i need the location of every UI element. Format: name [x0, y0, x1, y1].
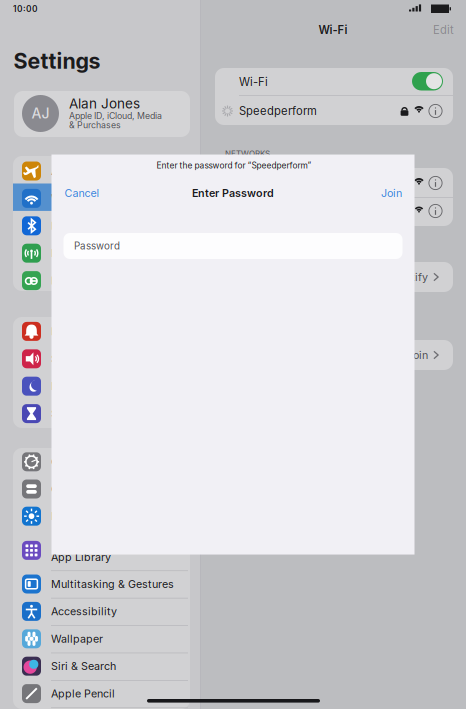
button[interactable]: Notifications — [0, 0, 466, 709]
staticText: Ask to Join — [373, 348, 428, 361]
staticText: Wi-Fi — [239, 75, 268, 89]
staticText: Join — [381, 186, 402, 199]
button[interactable] — [14, 91, 190, 137]
staticText: Aeroplane Mode — [51, 164, 134, 177]
staticText: Edit — [433, 23, 454, 37]
button[interactable]: Display & Brightness — [0, 0, 466, 709]
button[interactable]: Control Centre — [0, 0, 466, 709]
button[interactable]: Aeroplane Mode — [0, 0, 466, 709]
button[interactable]: App Library — [0, 0, 466, 709]
button[interactable]: Cancel — [0, 0, 466, 709]
button[interactable]: Bluetooth — [0, 0, 466, 709]
button[interactable]: Multitasking & Gestures — [0, 0, 466, 709]
staticText: Mobile Data — [51, 247, 113, 260]
button[interactable]: Wallpaper — [0, 0, 466, 709]
button[interactable]: Personal Hotspot — [0, 0, 466, 709]
staticText: App Library — [51, 550, 111, 563]
staticText: Apple Pencil — [51, 687, 115, 700]
button[interactable]: Accessibility — [0, 0, 466, 709]
staticText: & Purchases — [69, 120, 121, 130]
staticText: Cancel — [64, 186, 99, 199]
staticText: Siri & Search — [51, 660, 116, 673]
button[interactable]: Join — [0, 0, 466, 709]
staticText: Password — [74, 240, 120, 252]
button[interactable]: General — [0, 0, 466, 709]
staticText: Personal Hotspot — [51, 274, 138, 287]
staticText: Alan Jones — [69, 95, 140, 112]
staticText: AJ — [31, 105, 49, 122]
staticText: Sounds — [51, 352, 89, 365]
button[interactable]: Focus — [0, 0, 466, 709]
staticText: General — [51, 455, 90, 468]
staticText: Notifications — [51, 325, 116, 338]
staticText: Screen Time — [51, 407, 114, 420]
staticText: NETWORKS — [225, 149, 270, 158]
staticText: Accessibility — [51, 605, 117, 618]
staticText: Control Centre — [51, 482, 125, 495]
button[interactable]: Screen Time — [0, 0, 466, 709]
staticText: Settings — [13, 48, 100, 74]
button[interactable]: Wi-Fi — [0, 0, 466, 709]
staticText: Wi-Fi — [318, 23, 347, 37]
staticText: Enter Password — [192, 186, 274, 199]
staticText: Notify — [397, 270, 428, 283]
staticText: Enter the password for “Speedperform” — [156, 160, 311, 171]
staticText: 10:00 — [13, 4, 38, 14]
staticText: Multitasking & Gestures — [51, 577, 174, 590]
staticText: Wallpaper — [51, 632, 103, 645]
staticText: Apple ID, iCloud, Media — [69, 110, 162, 121]
button[interactable]: Edit — [0, 0, 466, 709]
staticText: Focus — [51, 380, 81, 393]
button[interactable]: Siri & Search — [0, 0, 466, 709]
button[interactable]: Mobile Data — [0, 0, 466, 709]
staticText: Display & Brightness — [51, 510, 158, 523]
staticText: Bluetooth — [51, 219, 98, 232]
staticText: Speedperform — [239, 104, 317, 118]
button[interactable]: Sounds — [0, 0, 466, 709]
staticText: Wi-Fi — [51, 192, 79, 205]
button[interactable]: Apple Pencil — [0, 0, 466, 709]
